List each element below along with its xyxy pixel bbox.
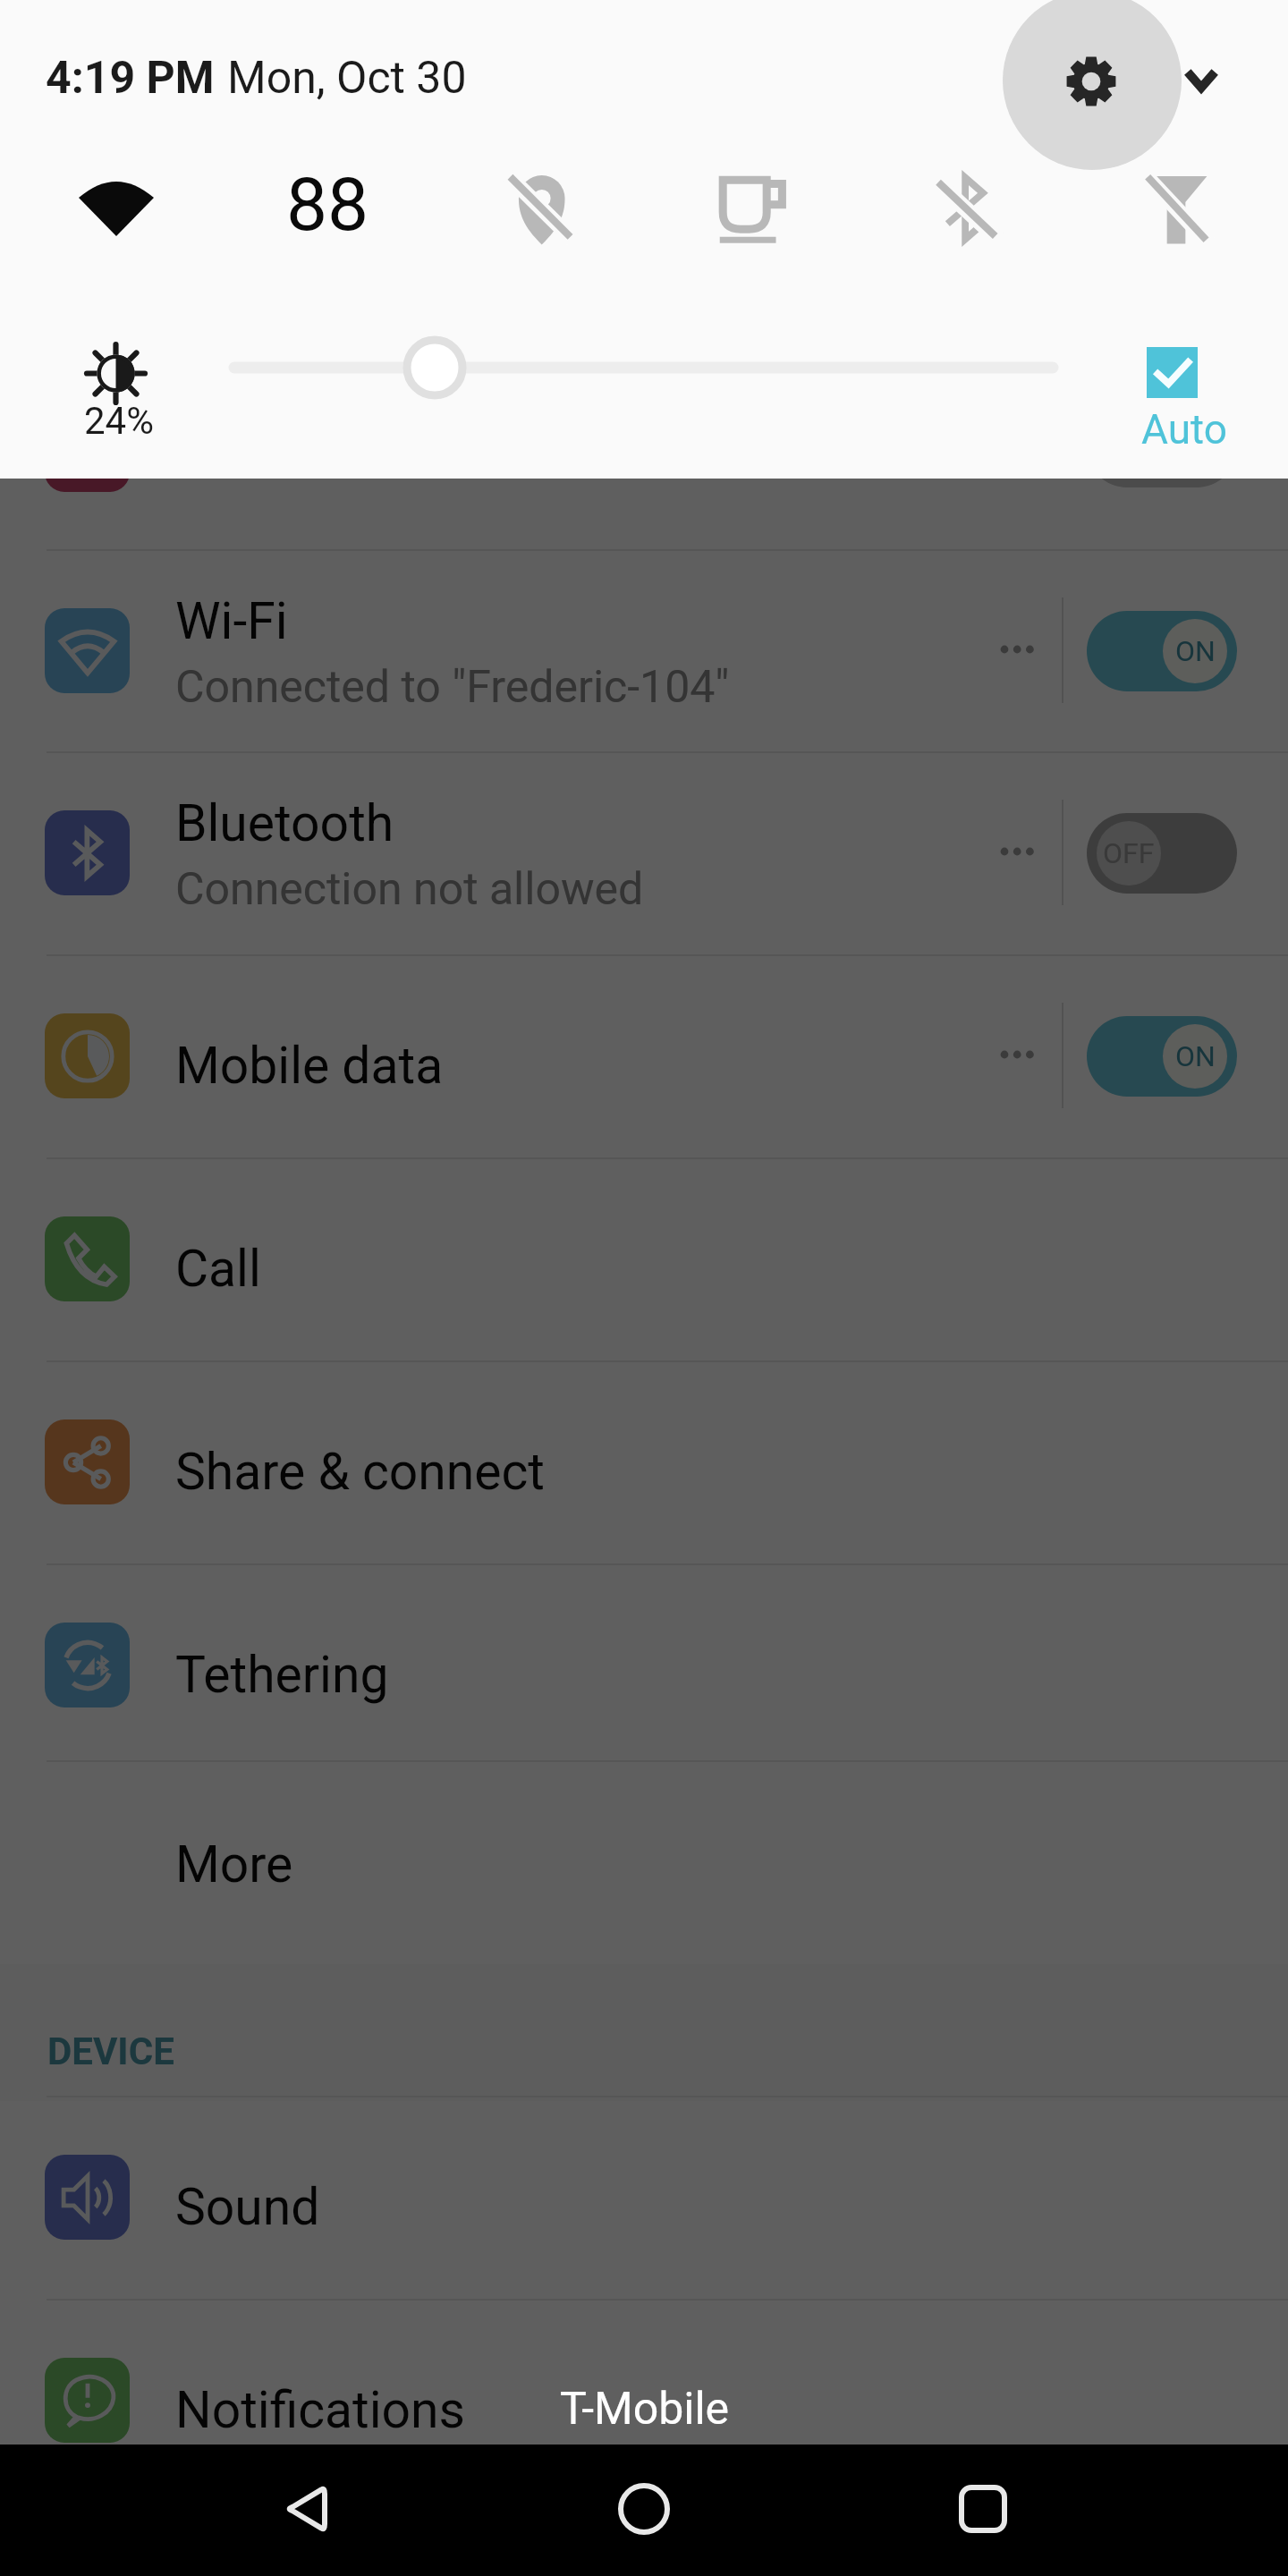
- button[interactable]: Recents: [945, 2471, 1021, 2546]
- staticText: Connected to "Frederic-104": [175, 661, 730, 714]
- button[interactable]: More: [0, 1760, 1288, 1964]
- button[interactable]: Share & connect: [0, 1360, 1288, 1563]
- staticText: Mon, Oct 30: [227, 52, 467, 105]
- button[interactable]: Home: [606, 2471, 682, 2546]
- staticText: T-Mobile: [560, 2383, 730, 2436]
- button[interactable]: ON: [1087, 1016, 1237, 1097]
- staticText: Mobile data: [175, 1036, 444, 1096]
- staticText: 24%: [84, 399, 154, 443]
- button[interactable]: Sound: [0, 2096, 1288, 2299]
- button[interactable]: Collapse: [1173, 51, 1230, 108]
- button[interactable]: Settings: [1003, 0, 1182, 170]
- staticText: Bluetooth: [175, 793, 394, 853]
- button[interactable]: Wi-Fi: [0, 549, 1288, 752]
- staticText: Call: [175, 1239, 261, 1299]
- staticText: OFF: [1103, 836, 1155, 870]
- staticText: Tethering: [175, 1645, 389, 1705]
- staticText: 4:19 PM: [46, 52, 215, 105]
- staticText: More: [175, 1835, 293, 1894]
- button[interactable]: Notifications: [0, 2299, 1288, 2502]
- button[interactable]: Call: [0, 1157, 1288, 1360]
- staticText: Connection not allowed: [175, 863, 644, 916]
- button[interactable]: Tethering: [0, 1563, 1288, 1767]
- staticText: ON: [1175, 634, 1216, 668]
- staticText: 88: [286, 162, 369, 248]
- button[interactable]: Back: [271, 2471, 346, 2546]
- button[interactable]: ON: [1087, 611, 1237, 691]
- button[interactable]: Mobile data: [0, 954, 1288, 1157]
- staticText: Sound: [175, 2177, 320, 2237]
- staticText: Auto: [1141, 405, 1227, 453]
- button[interactable]: Bluetooth: [0, 751, 1288, 954]
- staticText: Notifications: [175, 2380, 466, 2440]
- button[interactable]: Auto: [1118, 340, 1225, 447]
- button[interactable]: OFF: [1087, 813, 1237, 894]
- staticText: DEVICE: [47, 2029, 174, 2073]
- staticText: Share & connect: [175, 1442, 545, 1502]
- staticText: ON: [1175, 1039, 1216, 1073]
- staticText: Wi-Fi: [175, 591, 288, 651]
- button[interactable]: Brightness: [402, 335, 467, 400]
